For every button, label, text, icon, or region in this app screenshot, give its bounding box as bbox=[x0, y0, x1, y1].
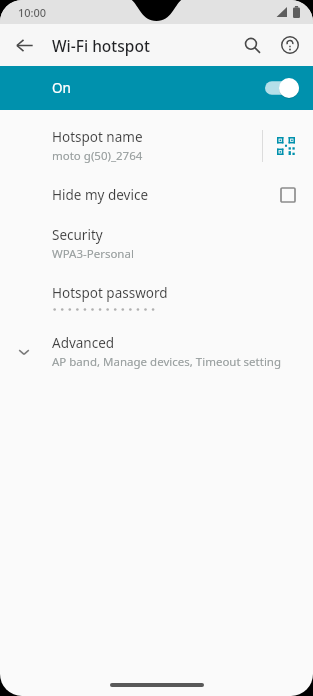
button[interactable]: Hotspot password bbox=[0, 271, 313, 325]
staticText: AP band, Manage devices, Timeout setting bbox=[52, 354, 282, 370]
button[interactable]: On bbox=[0, 66, 313, 110]
staticText: Advanced bbox=[52, 334, 115, 352]
button[interactable]: Share hotspot QR code bbox=[266, 126, 306, 166]
staticText: Hotspot name bbox=[52, 128, 143, 146]
button[interactable]: Hide my device bbox=[0, 173, 313, 217]
button[interactable]: Advanced bbox=[0, 325, 313, 379]
staticText: moto g(50)_2764 bbox=[52, 148, 143, 164]
staticText: Hotspot password bbox=[52, 284, 168, 302]
button[interactable]: Hotspot name bbox=[0, 119, 313, 173]
staticText: WPA3-Personal bbox=[52, 246, 134, 262]
button[interactable]: Help bbox=[271, 26, 309, 64]
button[interactable]: Back bbox=[5, 26, 43, 64]
button[interactable]: Search bbox=[233, 26, 271, 64]
staticText: Wi-Fi hotspot bbox=[52, 35, 150, 56]
staticText: Security bbox=[52, 226, 103, 244]
staticText: Hide my device bbox=[52, 186, 149, 204]
staticText: On bbox=[52, 79, 71, 97]
staticText: 10:00 bbox=[18, 5, 47, 20]
button[interactable]: Security bbox=[0, 217, 313, 271]
